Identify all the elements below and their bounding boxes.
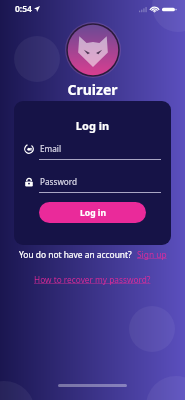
staticText: Log in (80, 207, 106, 219)
staticText: Log in (14, 118, 171, 133)
button[interactable]: Sign up (137, 249, 167, 260)
staticText: Cruizer (0, 80, 185, 99)
staticText: Sign up (137, 249, 167, 260)
staticText: You do not have an account? (19, 249, 132, 260)
staticText: 0:54 (15, 3, 32, 15)
button[interactable]: Log in (39, 202, 146, 223)
staticText: Password (40, 176, 78, 187)
staticText: How to recover my password? (34, 274, 151, 285)
button[interactable]: How to recover my password? (34, 274, 151, 285)
staticText: Email (40, 143, 62, 154)
